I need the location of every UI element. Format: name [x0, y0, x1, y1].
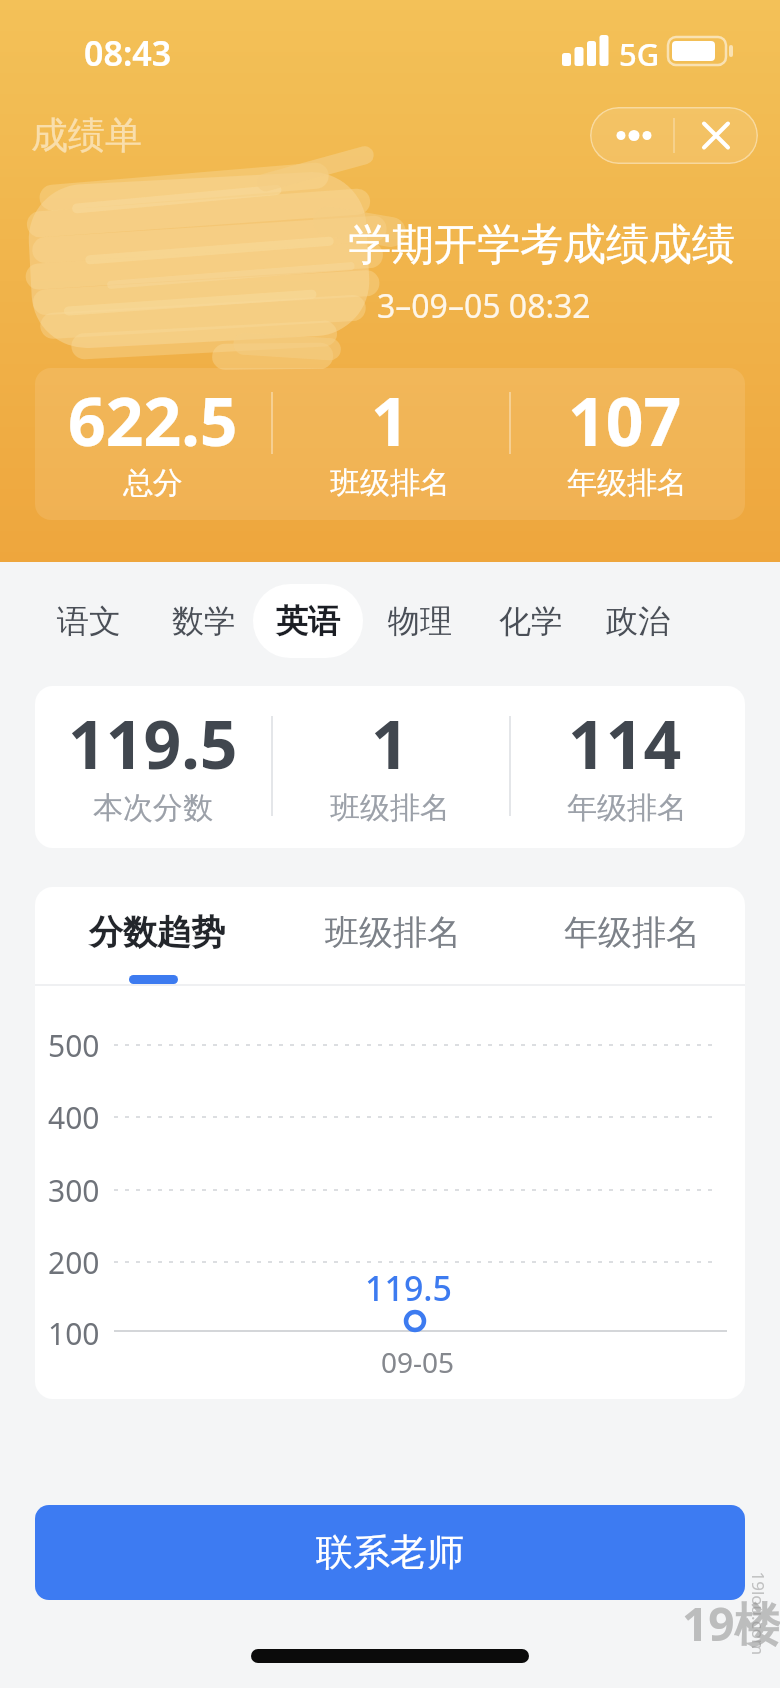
staticText: 100: [48, 1313, 100, 1353]
staticText: 年级排名: [567, 789, 687, 827]
staticText: 政治: [606, 601, 670, 641]
staticText: 114: [568, 698, 682, 788]
button[interactable]: 英语: [253, 591, 363, 651]
button[interactable]: [253, 584, 363, 658]
staticText: 107: [568, 375, 682, 465]
staticText: 200: [48, 1242, 100, 1282]
button[interactable]: 政治: [583, 591, 693, 651]
staticText: 500: [48, 1025, 100, 1065]
staticText: 1: [371, 698, 409, 788]
button[interactable]: 数学: [149, 591, 259, 651]
staticText: 19lou.com: [746, 1571, 769, 1655]
staticText: 分数趋势: [89, 911, 225, 954]
staticText: 300: [48, 1170, 100, 1210]
staticText: 年级排名: [567, 464, 687, 502]
staticText: 本次分数: [93, 789, 213, 827]
staticText: 班级排名: [330, 789, 450, 827]
button[interactable]: [590, 107, 758, 164]
button[interactable]: 物理: [365, 591, 475, 651]
button[interactable]: 化学: [476, 591, 586, 651]
staticText: 年级排名: [564, 911, 700, 954]
staticText: 5G: [619, 33, 660, 75]
staticText: 班级排名: [325, 911, 461, 954]
button[interactable]: 联系老师: [35, 1505, 745, 1600]
staticText: 英语: [276, 601, 340, 641]
staticText: 班级排名: [330, 464, 450, 502]
staticText: 语文: [57, 601, 121, 641]
button[interactable]: 分数趋势: [86, 905, 228, 960]
staticText: 119.5: [68, 698, 238, 788]
staticText: 1: [371, 375, 409, 465]
button[interactable]: 班级排名: [322, 905, 464, 960]
staticText: 物理: [388, 601, 452, 641]
staticText: 总分: [123, 464, 183, 502]
staticText: 3–09–05 08:32: [377, 284, 591, 328]
button[interactable]: 语文: [34, 591, 144, 651]
staticText: 学期开学考成绩成绩: [348, 218, 735, 272]
staticText: 400: [48, 1097, 100, 1137]
staticText: 19楼: [682, 1592, 780, 1655]
staticText: 08:43: [84, 30, 172, 76]
staticText: 数学: [172, 601, 236, 641]
staticText: 成绩单: [31, 112, 142, 159]
staticText: 联系老师: [316, 1529, 464, 1576]
staticText: 119.5: [365, 1265, 453, 1311]
button[interactable]: 年级排名: [561, 905, 703, 960]
staticText: 09-05: [381, 1343, 455, 1381]
staticText: 622.5: [68, 375, 238, 465]
staticText: 化学: [499, 601, 563, 641]
